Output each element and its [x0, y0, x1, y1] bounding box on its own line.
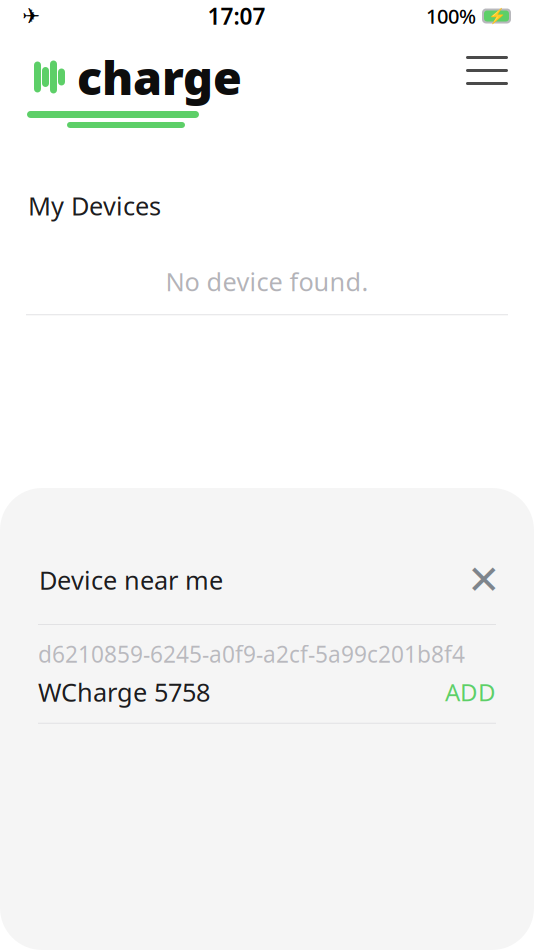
- button[interactable]: d6210859-6245-a0f9-a2cf-5a99c201b8f4: [0, 625, 534, 709]
- staticText: d6210859-6245-a0f9-a2cf-5a99c201b8f4: [38, 639, 465, 669]
- staticText: ✕: [467, 557, 501, 603]
- staticText: Device near me: [39, 563, 223, 597]
- staticText: 100%: [426, 3, 476, 29]
- button[interactable]: Close: [462, 558, 506, 602]
- staticText: My Devices: [28, 189, 161, 223]
- staticText: ✈: [22, 4, 40, 28]
- staticText: ADD: [445, 676, 496, 708]
- staticText: No device found.: [165, 265, 368, 298]
- staticText: ⚡: [487, 8, 505, 24]
- staticText: 17:07: [207, 1, 265, 31]
- staticText: charge: [77, 46, 242, 108]
- button[interactable]: Menu: [456, 46, 518, 95]
- staticText: WCharge 5758: [38, 675, 210, 709]
